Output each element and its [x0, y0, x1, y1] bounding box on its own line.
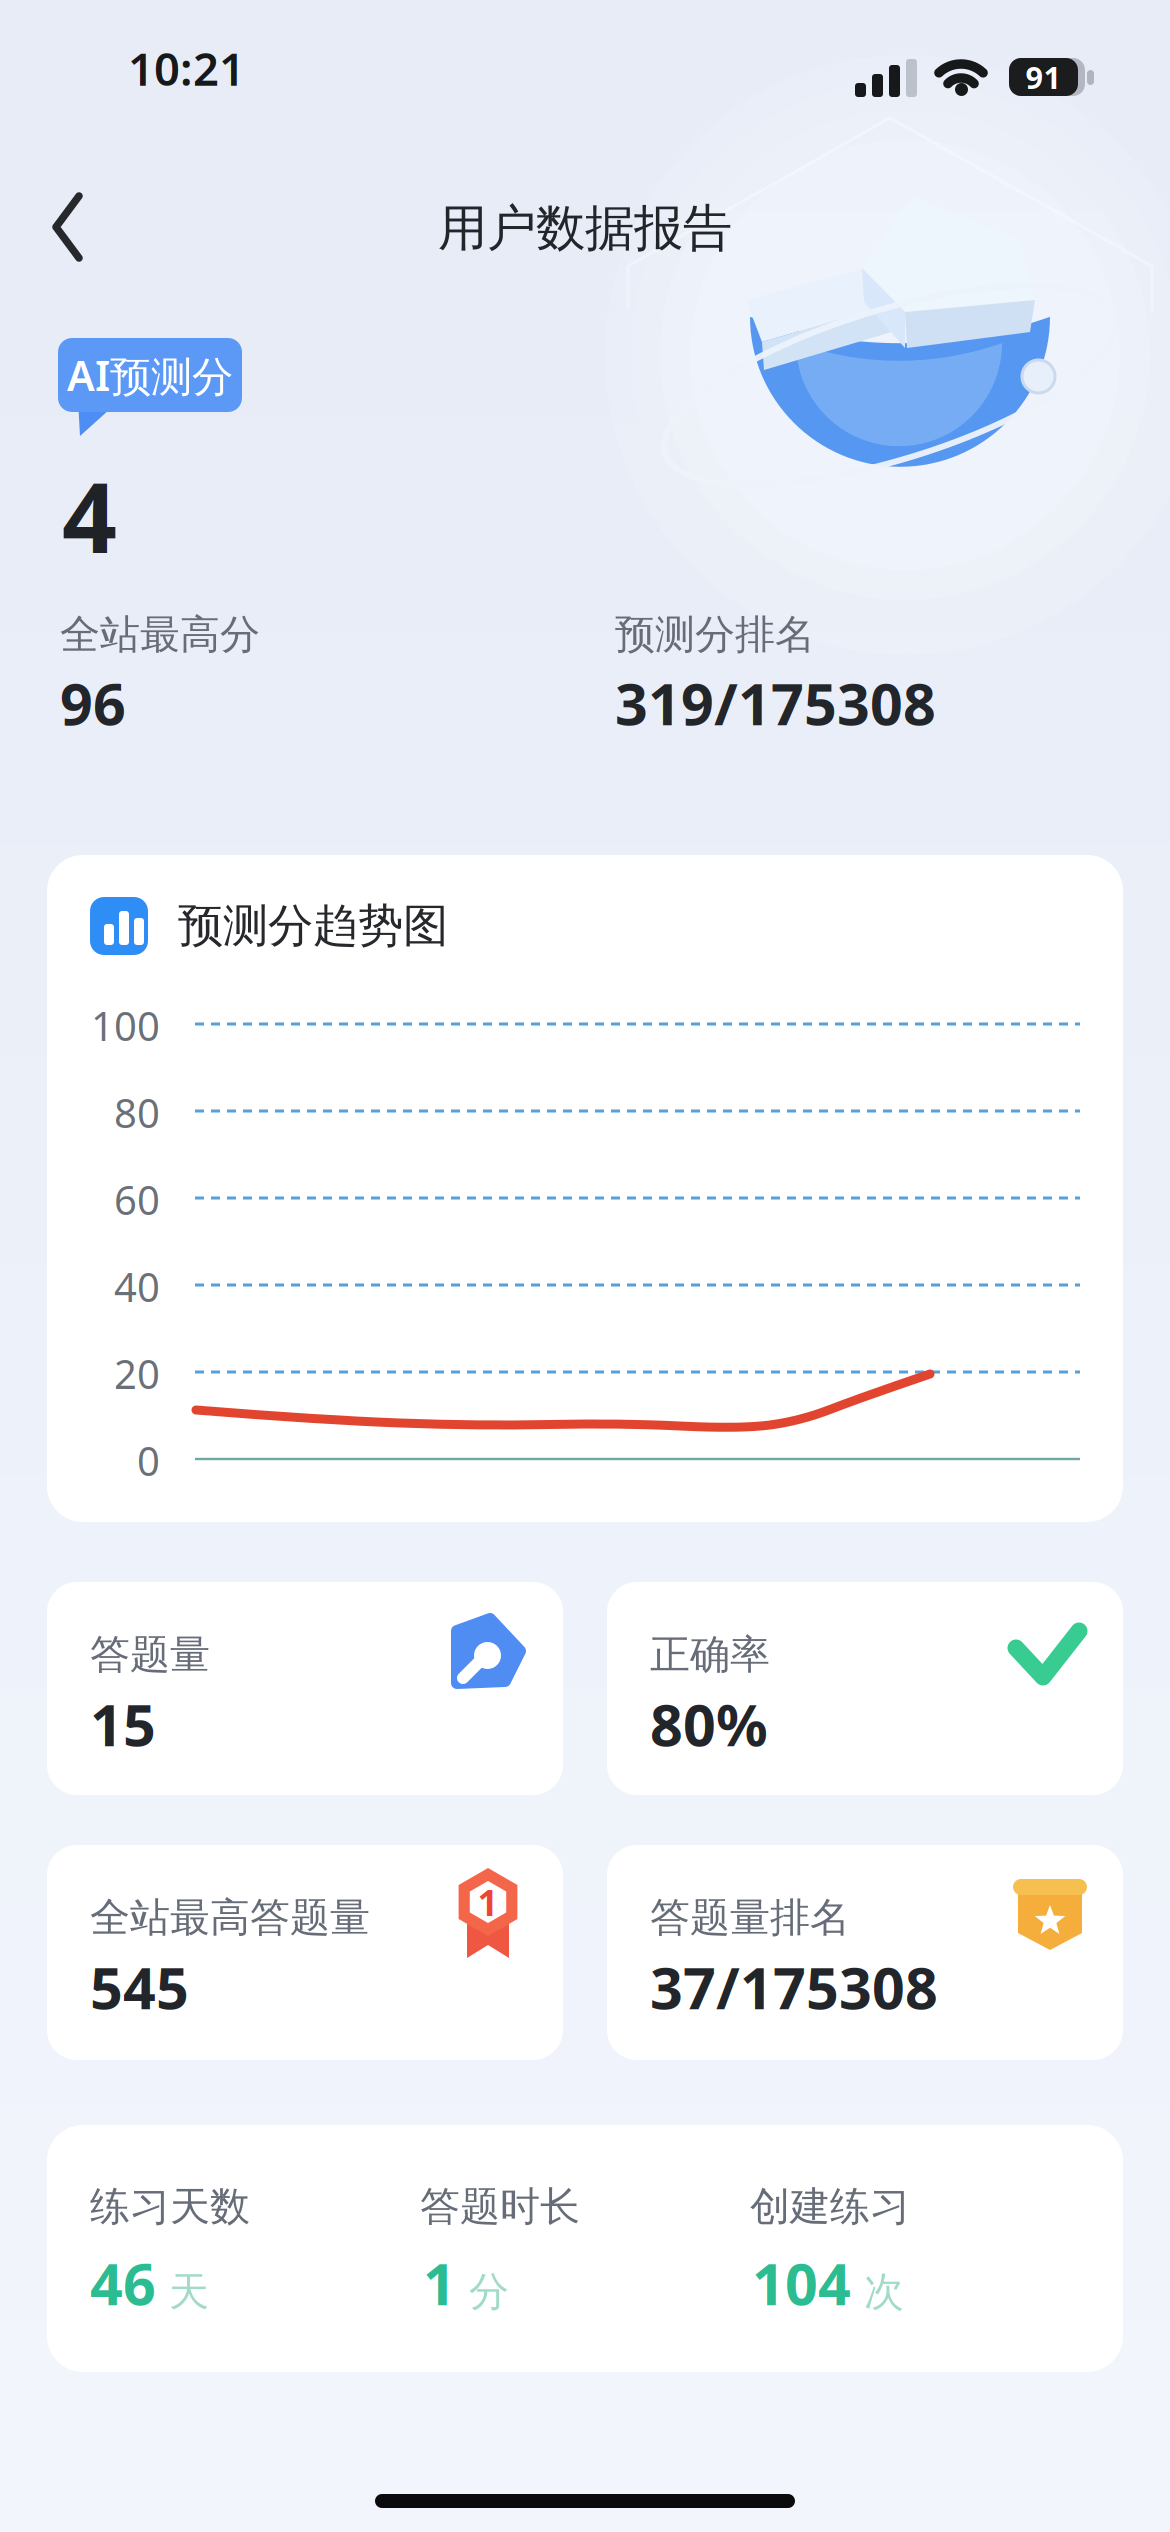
staticText: 96 — [60, 665, 126, 741]
staticText: 10:21 — [128, 38, 245, 98]
staticText: 104 — [752, 2245, 851, 2321]
staticText: 319/175308 — [615, 665, 936, 741]
staticText: 91 — [1025, 57, 1061, 97]
staticText: 答题量排名 — [650, 1893, 850, 1942]
staticText: 答题时长 — [420, 2182, 580, 2231]
staticText: 用户数据报告 — [438, 198, 732, 259]
staticText: 正确率 — [650, 1630, 770, 1679]
staticText: 全站最高分 — [60, 610, 260, 659]
staticText: 100 — [91, 999, 160, 1052]
staticText: 37/175308 — [650, 1949, 938, 2025]
staticText: 80 — [114, 1086, 160, 1139]
staticText: AI预测分 — [67, 347, 233, 402]
staticText: 预测分排名 — [615, 610, 815, 659]
staticText: 答题量 — [90, 1630, 210, 1679]
staticText: 80% — [650, 1686, 768, 1762]
staticText: 40 — [114, 1260, 160, 1313]
staticText: 1 — [423, 2245, 456, 2321]
staticText: 545 — [90, 1949, 189, 2025]
staticText: 15 — [90, 1686, 156, 1762]
button[interactable]: Back — [52, 185, 102, 269]
staticText: 分 — [469, 2267, 509, 2316]
staticText: 46 — [90, 2245, 156, 2321]
staticText: 练习天数 — [90, 2182, 250, 2231]
staticText: 创建练习 — [750, 2182, 910, 2231]
staticText: 次 — [864, 2267, 904, 2316]
staticText: 60 — [114, 1173, 160, 1226]
staticText: 20 — [114, 1347, 160, 1400]
staticText: 预测分趋势图 — [178, 898, 448, 954]
staticText: 0 — [137, 1434, 160, 1487]
staticText: 4 — [62, 452, 117, 579]
staticText: 全站最高答题量 — [90, 1893, 370, 1942]
staticText: 1 — [477, 1878, 498, 1926]
staticText: 天 — [169, 2267, 209, 2316]
